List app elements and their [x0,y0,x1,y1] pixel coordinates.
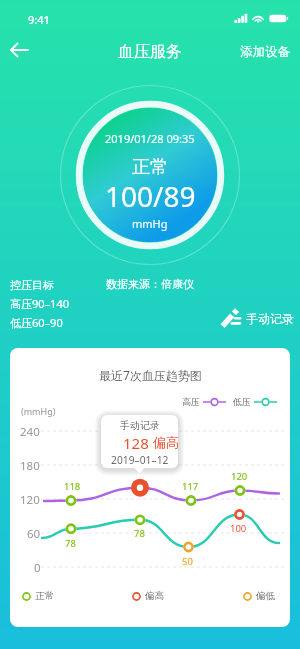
staticText: 78 [134,527,145,540]
button[interactable]: 手动记录 [101,415,178,468]
staticText: 118 [64,480,81,493]
staticText: 低压 [233,396,251,407]
staticText: mmHg [132,216,168,231]
staticText: 低压60–90 [10,315,63,330]
staticText: 240 [20,424,40,440]
button[interactable]: 手动记录 [214,304,294,330]
staticText: 手动记录 [246,311,294,326]
staticText: 0 [34,560,41,576]
staticText: 添加设备 [240,44,290,60]
staticText: 100 [230,522,247,535]
staticText: (mmHg) [21,405,56,417]
staticText: 2019/01/28 09:35 [105,131,195,146]
staticText: 数据来源：倍康仪 [106,277,194,291]
staticText: 最近7次血压趋势图 [99,367,202,383]
staticText: 正常 [132,156,168,179]
staticText: 9:41 [28,12,50,27]
staticText: 50 [182,555,193,568]
staticText: 血压服务 [118,42,182,62]
button[interactable]: 添加设备 [230,44,300,60]
staticText: 117 [182,480,199,493]
button[interactable]: 偏低 [243,590,275,602]
staticText: 手动记录 [120,419,160,432]
staticText: 60 [27,526,41,542]
staticText: 120 [20,492,40,508]
button[interactable]: Back [2,34,38,66]
staticText: 偏低 [256,590,275,602]
staticText: 180 [20,458,40,474]
staticText: 120 [231,470,248,483]
staticText: 2019–01–12 [111,453,169,467]
staticText: 偏高 [145,590,164,602]
staticText: 高压90–140 [10,296,69,311]
staticText: 78 [65,537,76,550]
staticText: 正常 [35,590,54,602]
staticText: 高压 [182,396,200,407]
staticText: 偏高 [153,434,179,450]
button[interactable]: 正常 [22,590,54,602]
staticText: 控压目标 [10,278,54,292]
staticText: 128 [123,433,149,453]
staticText: 100/89 [105,177,196,215]
button[interactable]: 偏高 [132,590,164,602]
